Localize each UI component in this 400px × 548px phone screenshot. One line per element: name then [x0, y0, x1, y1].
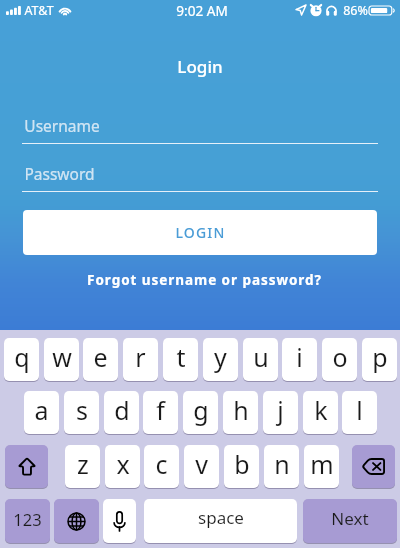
button[interactable]: v	[184, 445, 219, 488]
button[interactable]: LOGIN	[23, 210, 377, 255]
staticText: r	[135, 340, 146, 374]
button[interactable]: l	[342, 391, 377, 434]
staticText: space	[198, 506, 244, 529]
staticText: 123	[13, 508, 42, 530]
button[interactable]: i	[282, 338, 317, 381]
button[interactable]: x	[105, 445, 140, 488]
button[interactable]: q	[4, 338, 39, 381]
button[interactable]: 123	[5, 499, 50, 543]
staticText: l	[356, 393, 363, 427]
button[interactable]: t	[163, 338, 198, 381]
button[interactable]: Shift	[5, 445, 48, 488]
staticText: Login	[177, 55, 223, 78]
button[interactable]: Voice input	[103, 499, 136, 543]
staticText: q	[14, 340, 30, 374]
staticText: m	[310, 447, 334, 481]
staticText: p	[372, 340, 388, 374]
staticText: Password	[24, 163, 95, 184]
button[interactable]: Next	[303, 499, 397, 543]
button[interactable]: d	[104, 391, 139, 434]
button[interactable]: o	[322, 338, 357, 381]
staticText: k	[314, 393, 328, 427]
button[interactable]: h	[223, 391, 258, 434]
staticText: Username	[24, 115, 100, 136]
staticText: y	[214, 340, 227, 374]
staticText: w	[52, 340, 72, 374]
staticText: z	[77, 447, 89, 481]
staticText: n	[274, 447, 290, 481]
staticText: t	[176, 340, 186, 374]
staticText: u	[253, 340, 269, 374]
button[interactable]: y	[203, 338, 238, 381]
button[interactable]: k	[303, 391, 338, 434]
button[interactable]: b	[224, 445, 259, 488]
button[interactable]: n	[264, 445, 299, 488]
staticText: s	[76, 393, 88, 427]
staticText: Next	[331, 507, 369, 530]
staticText: Forgot username or password?	[87, 271, 322, 289]
staticText: 9:02 AM	[176, 1, 228, 20]
staticText: c	[155, 447, 168, 481]
button[interactable]: g	[183, 391, 218, 434]
staticText: b	[234, 447, 250, 481]
button[interactable]: z	[65, 445, 100, 488]
button[interactable]: w	[44, 338, 79, 381]
button[interactable]: r	[123, 338, 158, 381]
button[interactable]: s	[64, 391, 99, 434]
staticText: 86%	[343, 2, 368, 19]
button[interactable]: f	[143, 391, 178, 434]
staticText: AT&T	[24, 2, 54, 19]
staticText: v	[195, 447, 208, 481]
button[interactable]: p	[362, 338, 397, 381]
staticText: x	[116, 447, 130, 481]
staticText: f	[156, 393, 165, 427]
button[interactable]: Forgot username or password?	[83, 267, 326, 293]
staticText: i	[296, 340, 303, 374]
staticText: LOGIN	[175, 223, 226, 242]
button[interactable]: a	[24, 391, 59, 434]
staticText: a	[34, 393, 49, 427]
staticText: d	[114, 393, 130, 427]
button[interactable]: Backspace	[352, 445, 395, 488]
staticText: g	[193, 393, 209, 427]
button[interactable]: j	[263, 391, 298, 434]
staticText: o	[332, 340, 348, 374]
button[interactable]: m	[304, 445, 339, 488]
button[interactable]: e	[83, 338, 118, 381]
button[interactable]: Switch keyboard	[54, 499, 99, 543]
button[interactable]: u	[243, 338, 278, 381]
button[interactable]: c	[144, 445, 179, 488]
staticText: j	[277, 393, 284, 427]
button[interactable]: space	[144, 499, 297, 543]
staticText: e	[93, 340, 108, 374]
staticText: h	[233, 393, 249, 427]
